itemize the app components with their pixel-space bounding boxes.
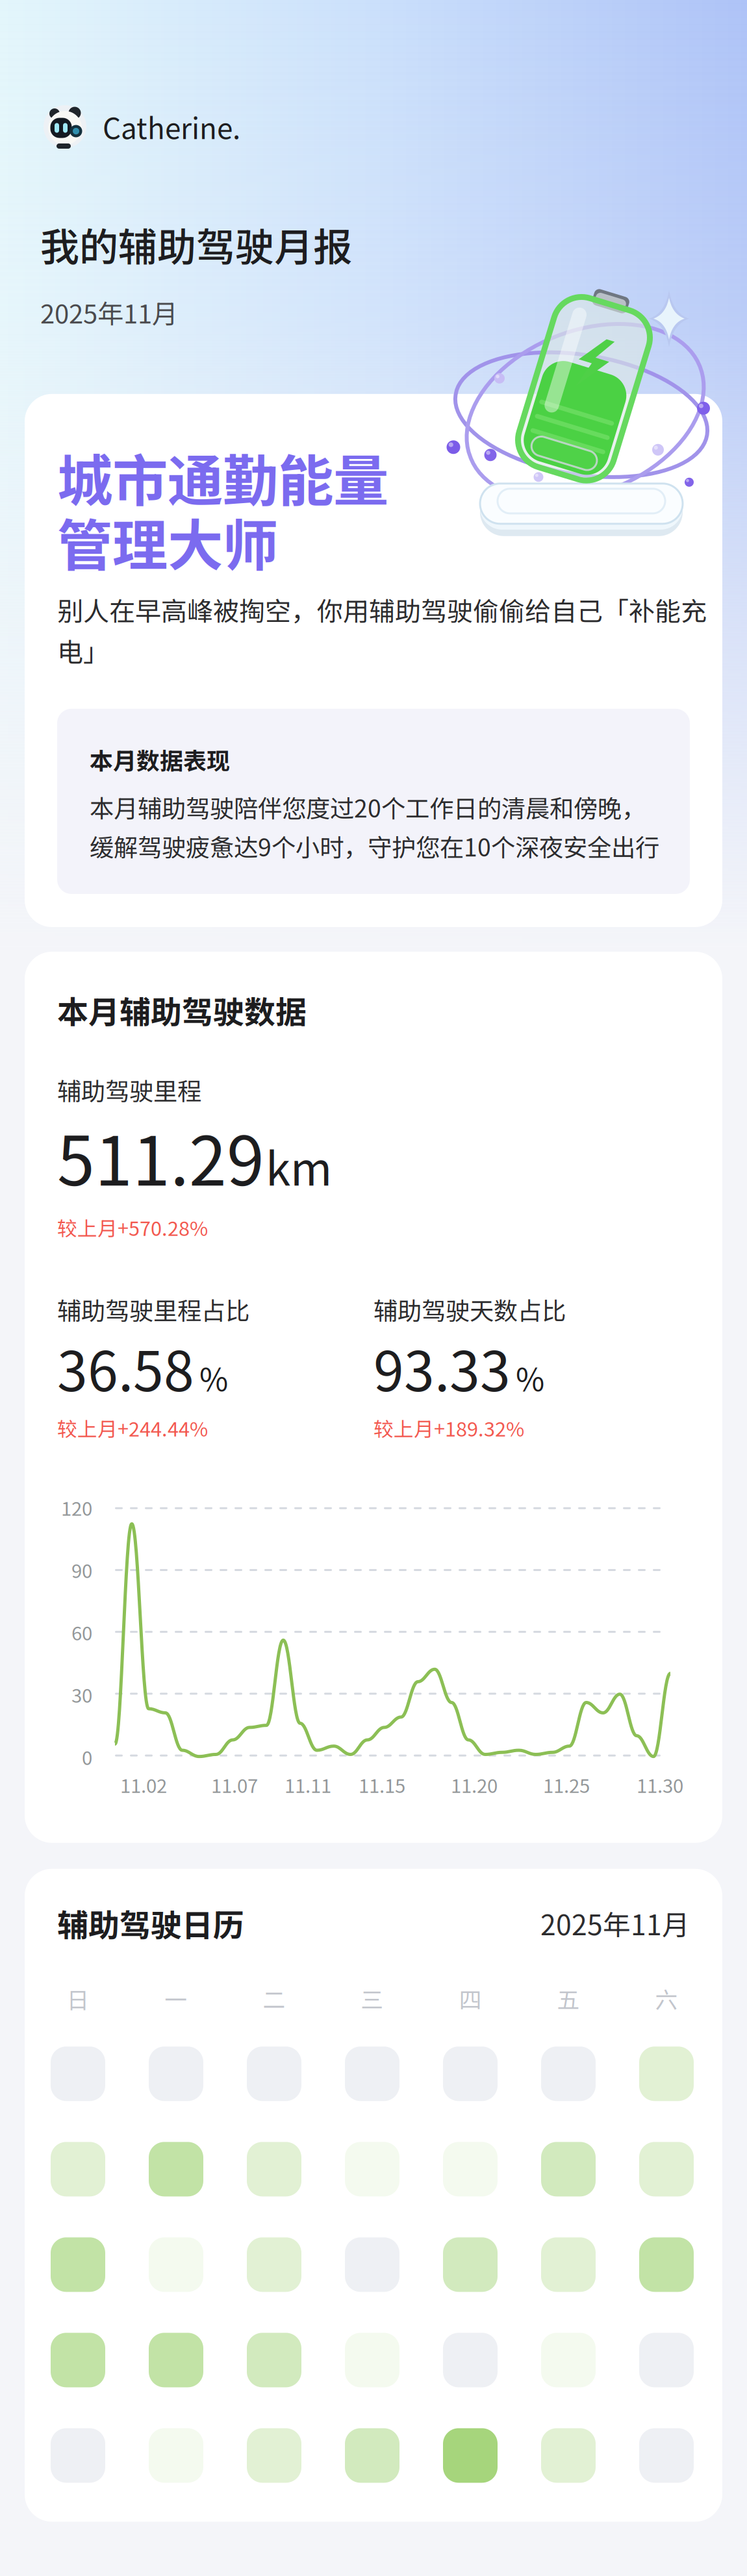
staticText: 五 (557, 1982, 580, 2015)
staticText: % (516, 1355, 544, 1400)
staticText: 120 (61, 1494, 92, 1521)
staticText: 11.30 (637, 1771, 683, 1798)
staticText: 三 (361, 1982, 384, 2015)
staticText: 较上月+570.28% (57, 1213, 208, 1242)
staticText: 60 (71, 1618, 92, 1646)
staticText: 11.02 (120, 1771, 167, 1798)
staticText: 11.11 (285, 1771, 331, 1798)
staticText: 别人在早高峰被掏空，你用辅助驾驶偷偷给自己「补能充电」 (57, 591, 707, 669)
staticText: 本月辅助驾驶数据 (57, 987, 307, 1033)
staticText: km (266, 1133, 332, 1199)
staticText: 11.25 (543, 1771, 590, 1798)
staticText: 本月辅助驾驶陪伴您度过20个工作日的清晨和傍晚，缓解驾驶疲惫达9个小时，守护您在… (90, 789, 659, 863)
staticText: 90 (71, 1556, 92, 1584)
staticText: 辅助驾驶里程 (57, 1072, 201, 1107)
staticText: 辅助驾驶里程占比 (57, 1292, 249, 1327)
staticText: 较上月+189.32% (373, 1413, 524, 1442)
staticText: 六 (655, 1982, 678, 2015)
staticText: 30 (71, 1681, 92, 1708)
staticText: % (199, 1355, 228, 1400)
staticText: 11.07 (211, 1771, 258, 1798)
staticText: 511.29 (57, 1107, 264, 1205)
staticText: 11.15 (359, 1771, 405, 1798)
staticText: 0 (82, 1743, 92, 1770)
staticText: 我的辅助驾驶月报 (40, 216, 352, 273)
staticText: 较上月+244.44% (57, 1413, 208, 1442)
staticText: 辅助驾驶天数占比 (373, 1292, 566, 1327)
staticText: 二 (263, 1982, 285, 2015)
button[interactable]: Catherine. (0, 105, 747, 149)
staticText: 93.33 (373, 1328, 511, 1407)
staticText: 2025年11月 (40, 293, 178, 331)
staticText: 四 (459, 1982, 482, 2015)
staticText: 一 (165, 1982, 187, 2015)
staticText: 城市通勤能量 管理大师 (57, 437, 388, 582)
staticText: Catherine. (103, 106, 240, 147)
staticText: 本月数据表现 (90, 743, 230, 776)
staticText: 辅助驾驶日历 (57, 1901, 244, 1946)
staticText: 2025年11月 (540, 1903, 690, 1943)
staticText: 36.58 (57, 1328, 194, 1407)
staticText: 11.20 (451, 1771, 498, 1798)
staticText: 日 (67, 1982, 89, 2015)
